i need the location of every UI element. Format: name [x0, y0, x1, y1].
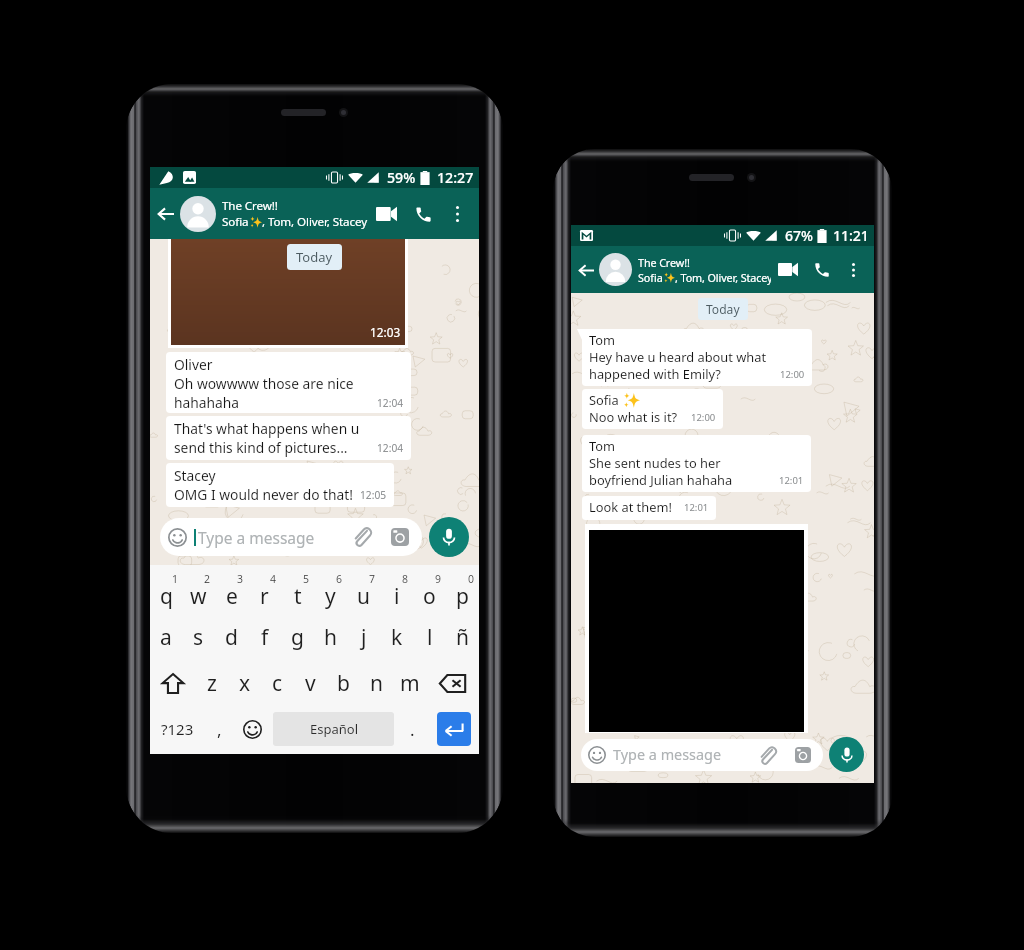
button[interactable]: Voice call — [805, 251, 838, 288]
button[interactable]: 8 — [380, 567, 413, 614]
button[interactable]: c — [261, 660, 294, 706]
button[interactable]: The Crew!! — [222, 198, 368, 230]
staticText: 4 — [270, 572, 277, 586]
button[interactable]: h — [314, 614, 347, 660]
button[interactable]: Record voice message — [429, 517, 469, 557]
staticText: n — [370, 669, 383, 698]
button[interactable]: More options — [838, 251, 869, 288]
button[interactable]: f — [248, 614, 281, 660]
button[interactable]: 5 — [281, 567, 314, 614]
staticText: Stacey — [174, 466, 216, 485]
staticText: 8 — [402, 572, 409, 586]
button[interactable]: That's what happens when u — [166, 416, 411, 460]
staticText: t — [294, 582, 302, 611]
button[interactable]: j — [347, 614, 380, 660]
staticText: l — [427, 623, 433, 652]
button[interactable]: Sofia — [582, 389, 723, 429]
button[interactable]: s — [182, 614, 215, 660]
button[interactable]: l — [413, 614, 446, 660]
staticText: 1 — [172, 572, 179, 586]
button[interactable]: Type a message — [581, 739, 823, 771]
staticText: f — [261, 623, 269, 652]
button[interactable]: Back — [575, 259, 597, 281]
staticText: 12:01 — [779, 474, 804, 487]
staticText: Oliver — [174, 355, 213, 374]
button[interactable]: 2 — [182, 567, 215, 614]
button[interactable]: 4 — [248, 567, 281, 614]
button[interactable]: Video call — [368, 194, 405, 234]
staticText: p — [456, 582, 469, 611]
staticText: 5 — [303, 572, 310, 586]
staticText: h — [324, 623, 337, 652]
staticText: 6 — [336, 572, 343, 586]
button[interactable]: Back — [154, 202, 178, 226]
button[interactable]: x — [228, 660, 261, 706]
button[interactable]: z — [195, 660, 228, 706]
staticText: 12:01 — [684, 501, 709, 514]
staticText: ?123 — [161, 719, 194, 739]
button[interactable]: m — [393, 660, 426, 706]
staticText: 67% — [785, 226, 813, 245]
staticText: The Crew!! — [222, 198, 278, 214]
button[interactable]: 0 — [446, 567, 479, 614]
button[interactable]: Tom — [582, 435, 811, 492]
button[interactable]: Type a message — [160, 518, 422, 556]
button[interactable]: Photo — [171, 239, 405, 345]
staticText: Today — [296, 248, 333, 266]
button[interactable]: ñ — [446, 614, 479, 660]
button[interactable]: Look at them! — [582, 496, 716, 520]
staticText: Hey have u heard about what — [589, 348, 767, 365]
staticText: 11:21 — [833, 226, 869, 245]
button[interactable]: Backspace — [426, 660, 479, 706]
button[interactable]: Voice call — [405, 194, 441, 234]
staticText: 9 — [435, 572, 442, 586]
staticText: x — [239, 669, 251, 698]
staticText: 12:05 — [360, 488, 387, 502]
button[interactable]: n — [360, 660, 393, 706]
staticText: d — [225, 623, 238, 652]
button[interactable]: d — [215, 614, 248, 660]
button[interactable]: k — [380, 614, 413, 660]
staticText: Sofia — [222, 214, 249, 230]
button[interactable]: Record voice message — [829, 737, 864, 772]
staticText: m — [400, 669, 420, 698]
button[interactable]: More options — [441, 194, 474, 234]
staticText: 3 — [237, 572, 244, 586]
button[interactable]: Enter — [437, 712, 471, 746]
button[interactable]: 6 — [314, 567, 347, 614]
staticText: OMG I would never do that! — [174, 485, 353, 504]
button[interactable]: a — [150, 614, 182, 660]
button[interactable]: 9 — [413, 567, 446, 614]
button[interactable]: ?123 — [150, 706, 204, 752]
staticText: e — [226, 582, 238, 611]
button[interactable]: Emoji — [234, 706, 271, 752]
button[interactable]: Shift — [150, 660, 195, 706]
staticText: Oh wowwww those are nice — [174, 374, 354, 393]
staticText: 12:00 — [780, 368, 805, 381]
button[interactable]: 3 — [215, 567, 248, 614]
staticText: w — [190, 582, 207, 611]
button[interactable]: Oliver — [166, 352, 411, 413]
staticText: She sent nudes to her — [589, 454, 721, 471]
staticText: z — [207, 669, 217, 698]
staticText: 12:00 — [691, 411, 716, 424]
staticText: b — [337, 669, 350, 698]
button[interactable]: Tom — [582, 329, 812, 386]
staticText: 12:04 — [377, 396, 404, 410]
button[interactable]: The Crew!! — [638, 255, 771, 285]
button[interactable]: g — [281, 614, 314, 660]
button[interactable]: . — [396, 706, 429, 752]
button[interactable]: 1 — [150, 567, 182, 614]
button[interactable]: 7 — [347, 567, 380, 614]
button[interactable]: Stacey — [166, 463, 394, 507]
staticText: happened with Emily? — [589, 365, 721, 382]
button[interactable]: , — [204, 706, 234, 752]
staticText: Look at them! — [589, 498, 672, 515]
button[interactable]: v — [294, 660, 327, 706]
staticText: . — [410, 718, 415, 741]
button[interactable]: Video call — [771, 251, 805, 288]
button[interactable]: b — [327, 660, 360, 706]
button[interactable]: Español — [273, 712, 394, 746]
staticText: Today — [706, 301, 740, 317]
